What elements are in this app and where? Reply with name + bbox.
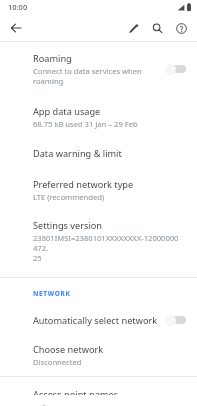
button[interactable]: Help	[171, 18, 191, 38]
button[interactable]: Settings version	[0, 210, 197, 272]
button[interactable]: Toggle	[165, 62, 187, 76]
staticText: Roaming	[33, 52, 72, 65]
staticText: App data usage	[33, 105, 101, 118]
button[interactable]: App data usage	[0, 95, 197, 137]
button[interactable]: Roaming	[0, 43, 197, 95]
button[interactable]: Automatically select network	[0, 305, 197, 335]
staticText: 10:00	[8, 2, 28, 12]
button[interactable]: Back	[5, 17, 26, 38]
button[interactable]: Access point names	[0, 377, 197, 406]
staticText: LTE (recommended)	[33, 192, 105, 202]
staticText: Connect to data services when roaming	[33, 66, 142, 86]
staticText: Automatically select network	[33, 314, 158, 327]
button[interactable]: Choose network	[0, 335, 197, 376]
button[interactable]: Data warning & limit	[0, 137, 197, 170]
staticText: Access point names	[33, 388, 119, 395]
button[interactable]: Toggle	[165, 313, 187, 327]
button[interactable]: Edit	[123, 18, 143, 38]
staticText: Preferred network type	[33, 178, 134, 191]
staticText: 23801IMSI=2380101XXXXXXXX-12000000472. 2…	[33, 233, 181, 263]
staticText: Choose network	[33, 343, 104, 356]
button[interactable]: Search	[147, 18, 167, 38]
staticText: Disconnected	[33, 357, 82, 367]
staticText: 68.75 kB used 31 Jan – 29 Feb	[33, 119, 138, 129]
staticText: NETWORK	[33, 289, 71, 298]
button[interactable]: Preferred network type	[0, 170, 197, 210]
staticText: Data warning & limit	[33, 147, 122, 160]
staticText: Settings version	[33, 219, 102, 232]
